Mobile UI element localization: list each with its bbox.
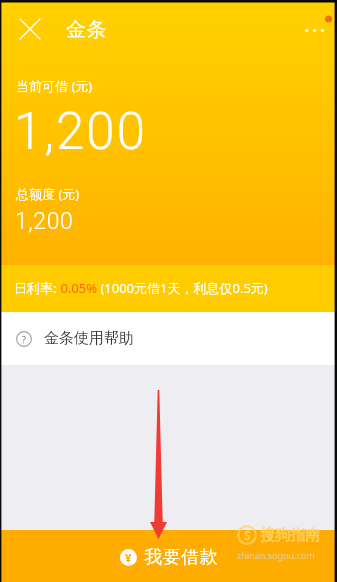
staticText: 日利率:: [14, 279, 57, 297]
button[interactable]: ¥: [0, 530, 337, 582]
staticText: (1000元借1天，利息仅0.5元): [97, 279, 268, 297]
button[interactable]: More options: [296, 12, 330, 46]
staticText: ?: [22, 333, 26, 345]
staticText: 我要借款: [144, 546, 218, 569]
staticText: 当前可借 (元): [16, 77, 93, 95]
staticText: 金条使用帮助: [44, 329, 134, 348]
button[interactable]: Close: [15, 14, 45, 44]
button[interactable]: ?: [0, 312, 337, 365]
staticText: 0.05%: [57, 279, 97, 297]
staticText: S: [244, 527, 251, 543]
staticText: 搜狗指南: [260, 526, 320, 545]
staticText: 金条: [66, 17, 107, 42]
staticText: ¥: [125, 550, 132, 565]
staticText: 1,200: [14, 102, 147, 162]
staticText: 1,200: [15, 208, 74, 235]
staticText: 总额度 (元): [16, 185, 80, 203]
staticText: zhinan.sogou.com: [237, 549, 315, 561]
